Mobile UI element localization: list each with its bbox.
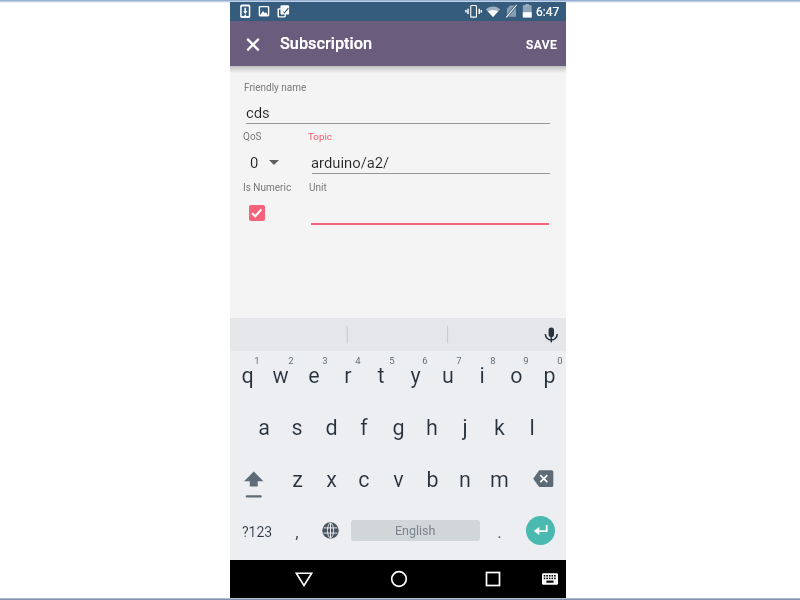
button[interactable]: u bbox=[432, 351, 466, 401]
button[interactable]: Back bbox=[286, 563, 322, 595]
staticText: r bbox=[344, 363, 352, 388]
staticText: SAVE bbox=[526, 38, 558, 52]
staticText: f bbox=[360, 415, 368, 440]
button[interactable]: z bbox=[280, 453, 314, 505]
staticText: 0 bbox=[557, 355, 563, 366]
button[interactable]: y bbox=[398, 351, 432, 401]
staticText: . bbox=[497, 522, 502, 542]
button[interactable]: c bbox=[348, 453, 382, 505]
staticText: Is Numeric bbox=[243, 182, 292, 194]
staticText: o bbox=[510, 363, 523, 388]
staticText: k bbox=[494, 415, 505, 440]
staticText: i bbox=[479, 363, 485, 388]
staticText: z bbox=[292, 467, 303, 492]
button[interactable]: r bbox=[331, 351, 365, 401]
button[interactable]: k bbox=[482, 401, 516, 453]
staticText: b bbox=[426, 467, 439, 492]
button[interactable]: t bbox=[364, 351, 398, 401]
staticText: h bbox=[426, 415, 438, 440]
staticText: q bbox=[241, 363, 254, 388]
button[interactable]: ?123 bbox=[235, 510, 279, 554]
staticText: 5 bbox=[389, 355, 395, 366]
staticText: x bbox=[326, 467, 337, 492]
button[interactable]: SAVE bbox=[519, 29, 564, 60]
staticText: Topic bbox=[308, 131, 332, 142]
button[interactable]: p bbox=[532, 351, 566, 401]
button[interactable]: b bbox=[415, 453, 449, 505]
button[interactable]: g bbox=[381, 401, 415, 453]
button[interactable]: a bbox=[247, 401, 281, 453]
staticText: cds bbox=[246, 104, 270, 121]
staticText: , bbox=[295, 522, 299, 542]
staticText: Subscription bbox=[280, 34, 373, 53]
staticText: d bbox=[325, 415, 338, 440]
staticText: v bbox=[393, 467, 404, 492]
button[interactable]: q bbox=[230, 351, 264, 401]
staticText: arduino/a2/ bbox=[311, 154, 390, 171]
button[interactable]: Shift bbox=[237, 463, 271, 505]
staticText: 1 bbox=[254, 355, 260, 366]
staticText: p bbox=[543, 363, 556, 388]
staticText: e bbox=[308, 363, 320, 388]
staticText: 2 bbox=[288, 355, 294, 366]
staticText: l bbox=[529, 415, 535, 440]
staticText: 7 bbox=[456, 355, 462, 366]
button[interactable]: f bbox=[348, 401, 382, 453]
staticText: QoS bbox=[243, 131, 262, 143]
button[interactable]: x bbox=[314, 453, 348, 505]
staticText: w bbox=[272, 363, 289, 388]
button[interactable]: Enter bbox=[526, 516, 555, 545]
staticText: 6:47 bbox=[536, 5, 560, 19]
button[interactable]: Recent apps bbox=[475, 563, 511, 595]
button[interactable]: i bbox=[465, 351, 499, 401]
button[interactable]: e bbox=[297, 351, 331, 401]
staticText: 3 bbox=[322, 355, 328, 366]
staticText: c bbox=[358, 467, 370, 492]
staticText: 0 bbox=[250, 154, 259, 171]
staticText: 9 bbox=[523, 355, 529, 366]
button[interactable]: Is Numeric bbox=[249, 205, 265, 221]
button[interactable]: n bbox=[448, 453, 482, 505]
staticText: 6 bbox=[422, 355, 428, 366]
button[interactable]: s bbox=[280, 401, 314, 453]
button[interactable]: d bbox=[314, 401, 348, 453]
staticText: a bbox=[258, 415, 270, 440]
button[interactable]: m bbox=[482, 453, 516, 505]
staticText: u bbox=[442, 363, 454, 388]
staticText: g bbox=[392, 415, 405, 440]
button[interactable]: Close bbox=[237, 27, 269, 59]
button[interactable]: h bbox=[415, 401, 449, 453]
staticText: y bbox=[410, 363, 421, 388]
button[interactable]: w bbox=[264, 351, 298, 401]
staticText: s bbox=[291, 415, 303, 440]
button[interactable]: l bbox=[516, 401, 550, 453]
staticText: English bbox=[395, 523, 436, 538]
staticText: m bbox=[490, 467, 509, 492]
button[interactable]: v bbox=[381, 453, 415, 505]
staticText: n bbox=[459, 467, 471, 492]
button[interactable]: Change language bbox=[318, 518, 343, 543]
staticText: 8 bbox=[490, 355, 496, 366]
button[interactable]: Switch keyboard bbox=[532, 563, 568, 595]
button[interactable]: English bbox=[351, 520, 480, 541]
button[interactable]: o bbox=[499, 351, 533, 401]
staticText: ?123 bbox=[242, 524, 273, 540]
button[interactable]: Home bbox=[381, 563, 417, 595]
staticText: t bbox=[377, 363, 385, 388]
button[interactable]: Backspace bbox=[527, 464, 559, 494]
button[interactable]: j bbox=[448, 401, 482, 453]
staticText: j bbox=[462, 415, 468, 440]
staticText: Friendly name bbox=[244, 82, 307, 94]
staticText: 4 bbox=[355, 355, 361, 366]
staticText: Unit bbox=[309, 182, 327, 194]
